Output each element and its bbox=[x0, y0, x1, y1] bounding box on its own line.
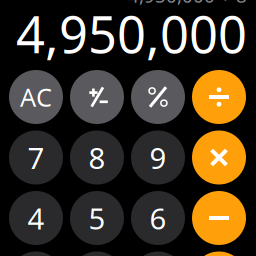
staticText: 5 bbox=[88, 198, 105, 237]
button[interactable]: 2 bbox=[70, 251, 124, 256]
staticText: 4,950,000 ÷ 8 bbox=[128, 0, 247, 8]
staticText: 4 bbox=[27, 198, 44, 237]
button[interactable]: 9 bbox=[131, 130, 185, 184]
button[interactable]: 4 bbox=[9, 191, 63, 245]
button[interactable]: Plus or minus bbox=[70, 70, 124, 124]
button[interactable]: Add bbox=[192, 251, 246, 256]
staticText: 8 bbox=[88, 138, 105, 177]
staticText: 4,950,000 bbox=[16, 0, 247, 67]
button[interactable]: 7 bbox=[9, 130, 63, 184]
staticText: 7 bbox=[27, 138, 44, 177]
button[interactable]: Subtract bbox=[192, 191, 246, 245]
staticText: 6 bbox=[149, 198, 166, 237]
staticText: AC bbox=[20, 80, 52, 114]
button[interactable]: 1 bbox=[9, 251, 63, 256]
button[interactable]: Percent bbox=[131, 70, 185, 124]
staticText: 9 bbox=[149, 138, 166, 177]
button[interactable]: AC bbox=[9, 70, 63, 124]
button[interactable]: Multiply bbox=[192, 130, 246, 184]
button[interactable]: Divide bbox=[192, 70, 246, 124]
button[interactable]: 8 bbox=[70, 130, 124, 184]
button[interactable]: 6 bbox=[131, 191, 185, 245]
button[interactable]: 5 bbox=[70, 191, 124, 245]
button[interactable]: 3 bbox=[131, 251, 185, 256]
